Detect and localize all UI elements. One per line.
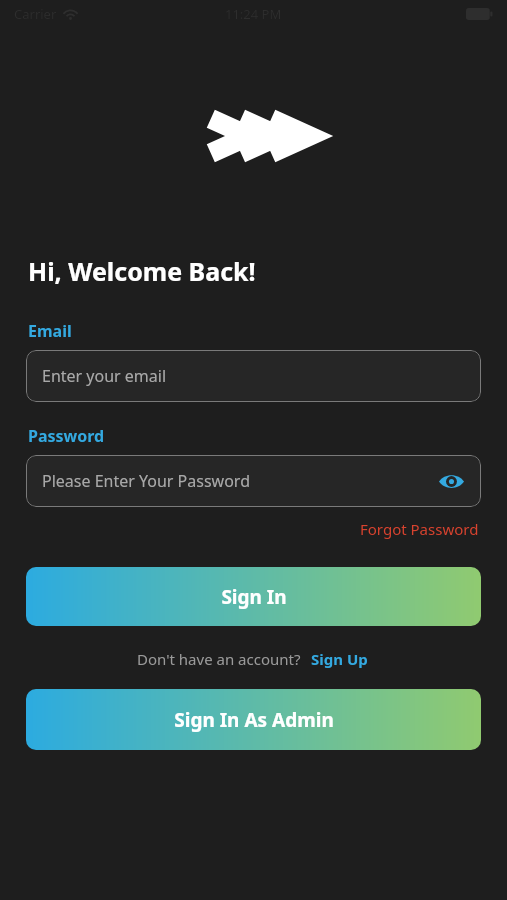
staticText: Email (28, 320, 72, 342)
button[interactable]: Sign In (26, 567, 481, 626)
button[interactable]: Show password (434, 464, 468, 498)
staticText: Carrier (14, 5, 57, 23)
button[interactable]: Forgot Password (358, 517, 481, 541)
staticText: Sign In As Admin (174, 707, 334, 733)
staticText: Sign In (221, 584, 287, 610)
button[interactable]: Enter your email (26, 350, 481, 402)
staticText: Don't have an account? (137, 649, 301, 669)
button[interactable]: Sign Up (309, 647, 370, 671)
staticText: Forgot Password (360, 519, 479, 539)
button[interactable]: Please Enter Your Password (26, 455, 481, 507)
staticText: Hi, Welcome Back! (28, 254, 256, 288)
staticText: Please Enter Your Password (42, 470, 250, 492)
staticText: Password (28, 425, 105, 447)
staticText: 11:24 PM (225, 5, 282, 23)
staticText: Sign Up (311, 649, 368, 669)
staticText: Enter your email (42, 365, 167, 387)
button[interactable]: Sign In As Admin (26, 689, 481, 750)
